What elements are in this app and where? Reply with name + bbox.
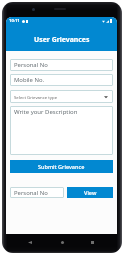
staticText: Mobile No. <box>14 76 45 84</box>
staticText: Personal No <box>14 189 48 197</box>
button[interactable]: Personal No <box>10 59 113 71</box>
button[interactable]: Submit Grievance <box>10 160 113 173</box>
button[interactable]: Mobile No. <box>10 74 113 86</box>
staticText: Select Grievance type <box>14 94 58 100</box>
button[interactable]: Select Grievance type <box>10 90 113 103</box>
button[interactable]: View <box>67 187 113 198</box>
staticText: Submit Grievance <box>38 163 85 170</box>
staticText: View <box>84 189 97 196</box>
staticText: Personal No <box>14 61 48 69</box>
staticText: Write your Description <box>14 108 78 116</box>
staticText: User Grievances <box>34 35 90 44</box>
button[interactable]: Write your Description <box>10 106 113 155</box>
staticText: 10:11 <box>9 18 20 24</box>
button[interactable]: Back <box>24 236 36 248</box>
button[interactable]: Personal No <box>10 187 64 198</box>
button[interactable]: Recents <box>86 236 98 248</box>
button[interactable]: Home <box>56 236 68 248</box>
